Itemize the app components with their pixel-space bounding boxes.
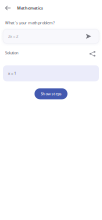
staticText: x = 1 <box>8 71 16 76</box>
button[interactable]: Solve <box>84 32 93 41</box>
button[interactable]: Show steps <box>34 88 67 99</box>
button[interactable]: Share <box>88 47 97 58</box>
staticText: Mathematics <box>17 5 43 11</box>
staticText: Show steps <box>40 91 61 96</box>
staticText: Solution <box>5 50 18 55</box>
staticText: What's your math problem? <box>5 20 55 25</box>
button[interactable]: Back <box>2 2 14 14</box>
staticText: 2x = 2 <box>8 34 18 39</box>
